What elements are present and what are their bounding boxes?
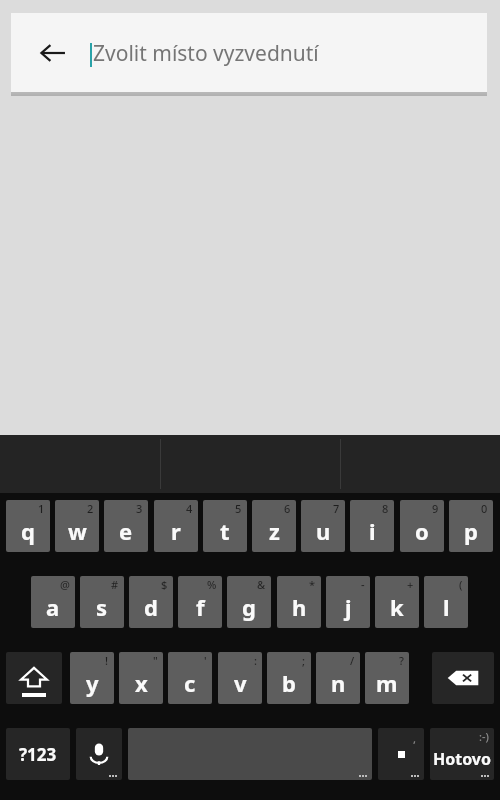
staticText: h	[292, 592, 307, 622]
staticText: %	[207, 577, 217, 592]
button[interactable]: 3	[104, 500, 148, 552]
button[interactable]: +	[375, 576, 419, 628]
staticText: 8	[382, 501, 389, 516]
button[interactable]: 4	[154, 500, 198, 552]
staticText: o	[415, 516, 429, 546]
staticText: w	[68, 516, 87, 546]
staticText: $	[161, 577, 168, 592]
button[interactable]: '	[168, 652, 212, 704]
staticText: g	[242, 592, 256, 622]
button[interactable]: Backspace	[432, 652, 494, 704]
button[interactable]: 1	[6, 500, 50, 552]
button[interactable]: %	[178, 576, 222, 628]
staticText: :-)	[479, 729, 489, 744]
staticText: @	[60, 577, 70, 592]
staticText: (	[459, 577, 463, 592]
staticText: f	[196, 592, 205, 622]
staticText: 9	[432, 501, 439, 516]
staticText: +	[407, 577, 414, 592]
button[interactable]: 2	[55, 500, 99, 552]
staticText: d	[144, 592, 158, 622]
staticText: *	[309, 577, 316, 592]
button[interactable]: -	[326, 576, 370, 628]
staticText: ;	[302, 653, 306, 668]
staticText: c	[184, 668, 196, 698]
staticText: Zvolit místo vyzvednutí	[93, 39, 319, 68]
button[interactable]: 8	[350, 500, 394, 552]
staticText: 4	[186, 501, 193, 516]
staticText: k	[390, 592, 404, 622]
staticText: ?	[399, 653, 404, 668]
staticText: ?123	[19, 743, 57, 766]
button[interactable]: @	[31, 576, 75, 628]
button[interactable]: &	[227, 576, 271, 628]
staticText: u	[316, 516, 331, 546]
staticText: 3	[136, 501, 143, 516]
staticText: 5	[235, 501, 242, 516]
staticText: r	[171, 516, 181, 546]
button[interactable]: ?123	[6, 728, 70, 780]
button[interactable]: !	[70, 652, 114, 704]
staticText: 0	[481, 501, 488, 516]
button[interactable]: "	[119, 652, 163, 704]
staticText: 1	[38, 501, 45, 516]
button[interactable]: $	[129, 576, 173, 628]
staticText: #	[111, 577, 119, 592]
button[interactable]: Space	[128, 728, 372, 780]
button[interactable]: ?	[365, 652, 409, 704]
staticText: j	[345, 592, 352, 622]
button[interactable]: 9	[400, 500, 444, 552]
staticText: e	[119, 516, 133, 546]
staticText: :	[254, 653, 257, 668]
staticText: x	[135, 668, 148, 698]
button[interactable]: 6	[252, 500, 296, 552]
staticText: Hotovo	[433, 748, 492, 770]
staticText: !	[105, 653, 109, 668]
button[interactable]: :	[218, 652, 262, 704]
button[interactable]: 7	[301, 500, 345, 552]
staticText: 7	[333, 501, 340, 516]
button[interactable]: (	[424, 576, 468, 628]
staticText: 2	[87, 501, 94, 516]
button[interactable]: Voice input	[76, 728, 122, 780]
staticText: z	[269, 516, 280, 546]
staticText: v	[234, 668, 247, 698]
staticText: &	[257, 577, 266, 592]
staticText: t	[220, 516, 230, 546]
staticText: q	[21, 516, 35, 546]
staticText: i	[369, 516, 376, 546]
staticText: b	[282, 668, 296, 698]
button[interactable]: :-)	[430, 728, 494, 780]
staticText: s	[96, 592, 108, 622]
staticText: /	[350, 653, 355, 668]
button[interactable]: Zvolit místo vyzvednutí	[81, 25, 471, 81]
button[interactable]: *	[277, 576, 321, 628]
staticText: "	[153, 653, 158, 668]
button[interactable]: ;	[267, 652, 311, 704]
staticText: l	[443, 592, 450, 622]
staticText: 6	[284, 501, 291, 516]
staticText: '	[204, 653, 207, 668]
button[interactable]: /	[316, 652, 360, 704]
staticText: a	[46, 592, 60, 622]
button[interactable]: 5	[203, 500, 247, 552]
staticText: p	[464, 516, 478, 546]
staticText: ,	[413, 731, 417, 746]
staticText: m	[376, 668, 398, 698]
button[interactable]: #	[80, 576, 124, 628]
staticText: n	[331, 668, 346, 698]
button[interactable]: Period	[378, 728, 424, 780]
button[interactable]: 0	[449, 500, 493, 552]
button[interactable]: Back	[33, 33, 73, 73]
staticText: y	[86, 668, 99, 698]
staticText: -	[361, 577, 365, 592]
button[interactable]: Shift	[6, 652, 62, 704]
